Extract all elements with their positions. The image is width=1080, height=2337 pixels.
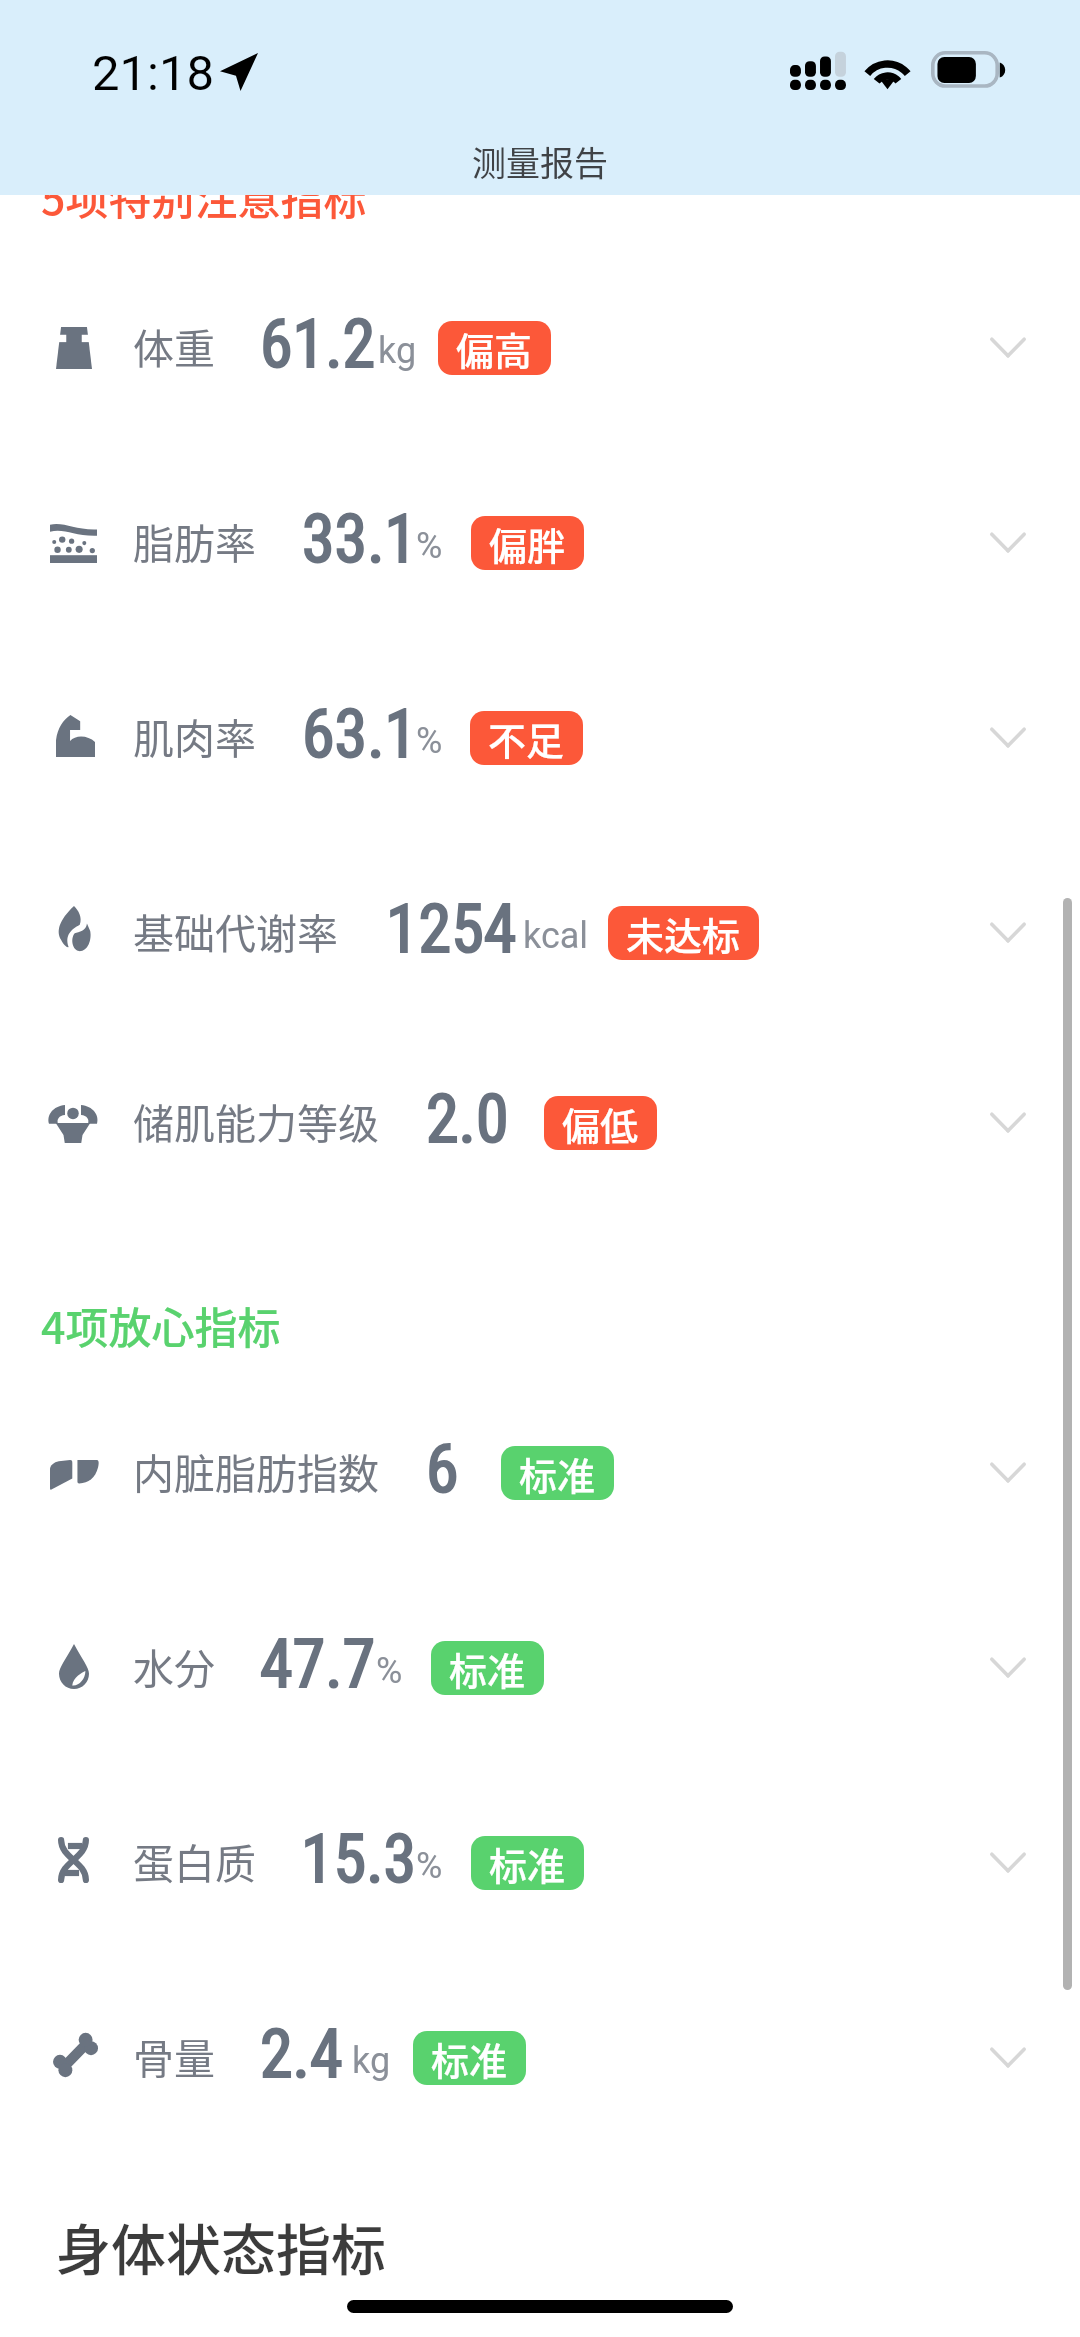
staticText: 61.2 — [260, 306, 376, 383]
button[interactable] — [0, 251, 1080, 446]
staticText: 63.1 — [302, 696, 418, 773]
button[interactable]: Expand 内脏脂肪指数 — [975, 1440, 1041, 1506]
button[interactable] — [0, 1766, 1080, 1961]
staticText: 身体状态指标 — [56, 2206, 387, 2286]
staticText: 未达标 — [626, 906, 741, 960]
staticText: 体重 — [133, 316, 215, 375]
staticText: 标准 — [431, 2031, 508, 2085]
button[interactable]: Expand 水分 — [975, 1635, 1041, 1701]
staticText: 标准 — [489, 1836, 566, 1890]
button[interactable]: 未达标 — [626, 906, 741, 960]
staticText: 2.4 — [260, 2016, 343, 2093]
other: Location — [220, 53, 258, 91]
staticText: 肌肉率 — [133, 706, 256, 765]
staticText: 骨量 — [133, 2026, 215, 2085]
staticText: 储肌能力等级 — [133, 1091, 379, 1150]
staticText: 15.3 — [301, 1821, 417, 1898]
staticText: 偏高 — [456, 321, 533, 375]
staticText: 不足 — [488, 711, 565, 765]
staticText: 1254 — [386, 891, 517, 968]
staticText: kg — [352, 2040, 391, 2082]
staticText: % — [416, 1845, 443, 1887]
staticText: 标准 — [449, 1641, 526, 1695]
staticText: kg — [378, 330, 417, 372]
button[interactable]: 标准 — [431, 2031, 508, 2085]
button[interactable]: 标准 — [449, 1641, 526, 1695]
button[interactable]: 标准 — [519, 1446, 596, 1500]
staticText: 标准 — [519, 1446, 596, 1500]
staticText: 33.1 — [302, 501, 418, 578]
button[interactable]: 标准 — [489, 1836, 566, 1890]
staticText: 47.7 — [260, 1626, 376, 1703]
button[interactable] — [0, 1961, 1080, 2156]
button[interactable]: 偏高 — [456, 321, 533, 375]
button[interactable] — [0, 836, 1080, 1031]
button[interactable]: Expand 骨量 — [975, 2025, 1041, 2091]
staticText: 4项放心指标 — [41, 1294, 281, 1356]
button[interactable]: Expand 基础代谢率 — [975, 900, 1041, 966]
button[interactable] — [0, 1571, 1080, 1766]
button[interactable]: Expand 脂肪率 — [975, 510, 1041, 576]
button[interactable]: Expand 肌肉率 — [975, 705, 1041, 771]
staticText: 21:18 — [92, 45, 215, 102]
staticText: % — [376, 1650, 403, 1692]
button[interactable] — [0, 1376, 1080, 1571]
staticText: 偏低 — [562, 1096, 639, 1150]
button[interactable]: 不足 — [488, 711, 565, 765]
button[interactable]: 偏低 — [562, 1096, 639, 1150]
staticText: % — [416, 525, 443, 567]
staticText: 6 — [426, 1431, 459, 1508]
button[interactable]: Expand 体重 — [975, 315, 1041, 381]
button[interactable]: Expand 储肌能力等级 — [975, 1090, 1041, 1156]
staticText: 偏胖 — [489, 516, 566, 570]
staticText: % — [416, 720, 443, 762]
staticText: kcal — [523, 915, 589, 957]
button[interactable] — [0, 641, 1080, 836]
button[interactable] — [0, 446, 1080, 641]
staticText: 测量报告 — [472, 137, 608, 186]
staticText: 水分 — [133, 1636, 215, 1695]
staticText: 2.0 — [426, 1081, 509, 1158]
staticText: 5项特别注意指标 — [41, 165, 367, 227]
staticText: 蛋白质 — [133, 1831, 256, 1890]
button[interactable]: 偏胖 — [489, 516, 566, 570]
button[interactable]: Expand 蛋白质 — [975, 1830, 1041, 1896]
staticText: 内脏脂肪指数 — [133, 1441, 379, 1500]
staticText: 基础代谢率 — [133, 901, 338, 960]
button[interactable] — [0, 1026, 1080, 1221]
staticText: 脂肪率 — [133, 511, 256, 570]
